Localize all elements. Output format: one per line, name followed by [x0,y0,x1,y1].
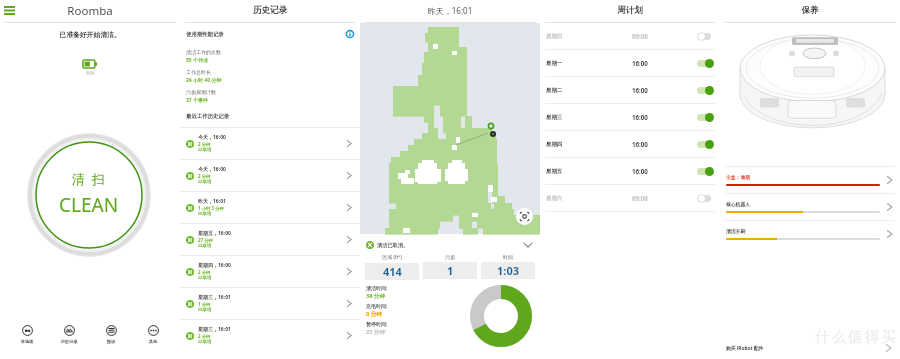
button[interactable]: 预设 [90,325,132,348]
staticText: 其他 [132,339,174,344]
staticText: 414 [383,264,402,279]
staticText: 已取消 [198,243,212,249]
staticText: 已取消 [198,339,212,345]
staticText: 核心机器人 [726,201,750,207]
button[interactable]: 清 扫 [27,133,151,257]
staticText: 25 分钟 [366,328,386,336]
staticText: 星期五，16:00 [198,230,231,237]
staticText: 昨天，16:01 [360,5,540,16]
button[interactable]: Menu [4,6,15,15]
staticText: 55 个作业 [186,57,209,64]
staticText: 星期三，16:01 [198,294,231,301]
staticText: 星期六 [546,195,563,202]
staticText: 最近工作历史记录 [186,113,230,120]
button[interactable]: 今天，16:00 [180,128,360,159]
staticText: 1 分钟 [198,301,211,307]
staticText: 清 扫 [72,170,106,188]
staticText: 已取消 [198,147,212,153]
staticText: 保养 [720,5,900,16]
staticText: 星期四 [546,141,563,148]
staticText: 16:00 [632,86,648,94]
staticText: 已取消 [198,307,212,313]
staticText: 2 分钟 [198,333,211,339]
staticText: 时间 [481,254,535,260]
staticText: 2 分钟 [198,269,211,275]
button[interactable]: 星期六 [540,185,720,211]
button[interactable]: 星期一 [540,50,720,76]
staticText: 16:00 [632,59,648,67]
button[interactable]: 星期四 [540,131,720,157]
staticText: 尘盒：逾期 [726,174,750,180]
button[interactable]: 尘盒：逾期 [720,167,900,193]
staticText: 清洁已取消。 [377,242,409,249]
staticText: 星期三 [546,114,563,121]
staticText: 已取消 [198,179,212,185]
staticText: 星期日 [546,33,563,40]
button[interactable]: 首选项 [6,325,48,348]
button[interactable]: Toggle 星期六 schedule [694,193,714,203]
staticText: 38 分钟 [366,292,386,300]
button[interactable]: 今天，16:00 [180,160,360,191]
staticText: 首选项 [6,339,48,344]
button[interactable]: 星期二 [540,77,720,103]
button[interactable]: Toggle 星期五 schedule [694,166,714,176]
staticText: 56% [0,70,180,76]
button[interactable]: 核心机器人 [720,194,900,220]
staticText: 暂停时间: [366,321,388,328]
button[interactable]: 清洁主刷 [720,221,900,247]
staticText: 周计划 [540,5,720,16]
staticText: 星期二 [546,87,563,94]
staticText: 2 分钟 [198,173,211,179]
button[interactable]: 昨天，16:01 [180,192,360,223]
staticText: 0 分钟 [366,310,382,318]
staticText: CLEAN [59,192,119,218]
button[interactable]: Toggle 星期一 schedule [694,58,714,68]
staticText: 历史记录 [180,5,360,16]
staticText: 37 个事件 [186,97,209,104]
button[interactable]: 购买 iRobot 配件 [726,343,894,353]
staticText: 充电时间: [366,303,388,310]
button[interactable]: Toggle 星期三 schedule [694,112,714,122]
button[interactable]: 星期四，16:00 [180,256,360,287]
staticText: 已准备好开始清洁。 [0,30,180,39]
staticText: 16:00 [632,113,648,121]
button[interactable]: 星期五 [540,158,720,184]
staticText: 预设 [90,339,132,344]
staticText: 星期三，16:01 [198,326,231,333]
staticText: 昨天，16:01 [198,198,226,205]
staticText: 27 分钟 [198,237,213,243]
button[interactable]: 星期三 [540,104,720,130]
button[interactable]: Toggle 星期日 schedule [694,31,714,41]
staticText: 历史记录 [48,339,90,344]
staticText: 1:03 [497,263,519,278]
staticText: 星期一 [546,60,563,67]
button[interactable]: Info [346,30,354,38]
staticText: 星期四，16:00 [198,262,231,269]
button[interactable]: 星期五，16:00 [180,224,360,255]
button[interactable]: 历史记录 [48,325,90,348]
button[interactable]: Toggle 星期二 schedule [694,85,714,95]
staticText: 16:00 [632,140,648,148]
staticText: 工作总时长 [186,69,211,75]
staticText: 2 分钟 [198,141,211,147]
staticText: 星期五 [546,168,563,175]
button[interactable]: 星期三，16:01 [180,320,360,351]
staticText: 09:00 [632,32,648,40]
staticText: 清洁工作的次数 [186,49,221,55]
staticText: 清洁主刷 [726,228,746,234]
staticText: 16:00 [632,167,648,175]
staticText: 污垢探测计数 [186,89,216,95]
staticText: 购买 iRobot 配件 [726,345,764,352]
button[interactable]: 星期三，16:01 [180,288,360,319]
button[interactable]: Recenter map [516,208,533,225]
staticText: Roomba [0,3,180,19]
staticText: 已取消 [198,211,212,217]
button[interactable]: Toggle 星期四 schedule [694,139,714,149]
staticText: 今天，16:00 [198,166,226,173]
button[interactable]: 其他 [132,325,174,348]
staticText: 使用期性能记录 [186,31,224,38]
staticText: 1 [447,263,454,278]
button[interactable]: 星期日 [540,23,720,49]
staticText: 今天，16:00 [198,134,226,141]
staticText: 已取消 [198,275,212,281]
